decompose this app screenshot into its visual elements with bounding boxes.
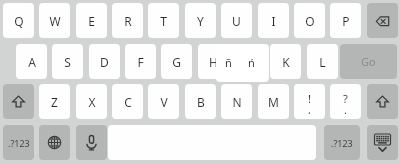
button[interactable]: S — [52, 44, 83, 79]
staticText: R — [124, 13, 132, 29]
staticText: K — [282, 54, 290, 70]
button[interactable]: Hide keyboard — [367, 125, 398, 160]
staticText: B — [197, 94, 205, 110]
button[interactable]: Backspace — [367, 3, 398, 38]
button[interactable]: G — [161, 44, 192, 79]
staticText: L — [319, 54, 326, 70]
button[interactable]: U — [221, 3, 252, 38]
button[interactable]: Voice input — [76, 125, 107, 160]
staticText: ? — [330, 91, 361, 103]
staticText: Go — [361, 54, 376, 69]
button[interactable]: D — [89, 44, 120, 79]
staticText: F — [137, 54, 144, 70]
button[interactable]: K — [270, 44, 301, 79]
staticText: M — [268, 94, 279, 110]
button[interactable]: Q — [3, 3, 34, 38]
staticText: P — [342, 13, 350, 29]
staticText: Z — [51, 94, 58, 110]
staticText: Y — [197, 13, 204, 29]
button[interactable]: Z — [39, 84, 70, 119]
button[interactable]: Shift — [367, 84, 398, 119]
button[interactable]: X — [76, 84, 107, 119]
button[interactable]: R — [112, 3, 143, 38]
button[interactable]: W — [39, 3, 70, 38]
button[interactable]: O — [294, 3, 325, 38]
button[interactable]: M — [258, 84, 289, 119]
staticText: G — [172, 54, 181, 70]
staticText: .?123 — [331, 137, 353, 149]
staticText: ñ — [225, 55, 232, 70]
staticText: C — [124, 94, 132, 110]
button[interactable]: E — [76, 3, 107, 38]
button[interactable]: H — [198, 44, 229, 79]
staticText: W — [49, 13, 61, 29]
button[interactable]: B — [185, 84, 216, 119]
staticText: , — [294, 102, 325, 114]
staticText: ń — [248, 55, 255, 70]
button[interactable]: F — [125, 44, 156, 79]
button[interactable]: C — [112, 84, 143, 119]
button[interactable]: T — [148, 3, 179, 38]
staticText: V — [160, 94, 168, 110]
staticText: X — [88, 94, 96, 110]
button[interactable]: .?123 — [3, 125, 34, 160]
staticText: N — [232, 94, 242, 110]
button[interactable]: ? — [330, 84, 361, 119]
staticText: Q — [14, 13, 24, 29]
button[interactable]: A — [16, 44, 47, 79]
staticText: U — [232, 13, 241, 29]
staticText: I — [271, 13, 276, 29]
button[interactable]: L — [307, 44, 338, 79]
button[interactable]: ! — [294, 84, 325, 119]
staticText: E — [88, 13, 95, 29]
button[interactable]: Go — [340, 44, 397, 79]
button[interactable]: Shift — [3, 84, 34, 119]
button[interactable]: Y — [185, 3, 216, 38]
staticText: S — [64, 54, 71, 70]
staticText: ! — [294, 91, 325, 103]
staticText: H — [209, 54, 218, 70]
staticText: J — [248, 54, 252, 70]
button[interactable]: V — [148, 84, 179, 119]
button[interactable]: J — [234, 44, 265, 79]
staticText: T — [160, 13, 167, 29]
staticText: .?123 — [8, 137, 30, 149]
button[interactable]: I — [258, 3, 289, 38]
button[interactable]: P — [330, 3, 361, 38]
button[interactable]: .?123 — [324, 125, 360, 160]
staticText: O — [305, 13, 315, 29]
staticText: D — [100, 54, 109, 70]
staticText: A — [28, 54, 36, 70]
staticText: . — [330, 102, 361, 114]
button[interactable]: Change language — [39, 125, 70, 160]
button[interactable]: N — [221, 84, 252, 119]
